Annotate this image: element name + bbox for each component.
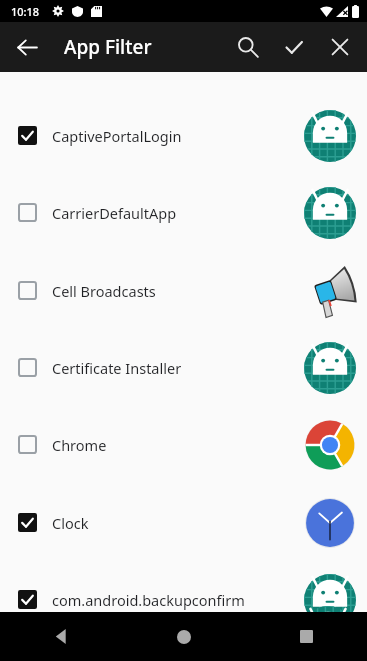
staticText: Chrome (52, 435, 107, 455)
button[interactable]: Certificate Installer (0, 329, 367, 406)
staticText: Certificate Installer (52, 358, 182, 378)
staticText: com.android.backupconfirm (52, 590, 245, 610)
button[interactable]: Cell Broadcasts (0, 252, 367, 329)
button[interactable]: Recents (245, 612, 367, 661)
button[interactable]: Confirm (271, 24, 317, 70)
staticText: Cell Broadcasts (52, 281, 156, 301)
button[interactable]: Home (123, 612, 245, 661)
staticText: App Filter (64, 34, 152, 60)
staticText: CaptivePortalLogin (52, 126, 182, 146)
staticText: CarrierDefaultApp (52, 203, 177, 223)
button[interactable]: Back (6, 26, 48, 68)
button[interactable]: CaptivePortalLogin (0, 97, 367, 174)
button[interactable]: Search (225, 24, 271, 70)
button[interactable]: Close (317, 24, 363, 70)
staticText: Clock (52, 513, 89, 533)
staticText: 10:18 (11, 4, 40, 19)
button[interactable]: CarrierDefaultApp (0, 174, 367, 251)
button[interactable]: Clock (0, 484, 367, 561)
button[interactable]: Chrome (0, 406, 367, 483)
button[interactable]: com.android.backupconfirm (0, 561, 367, 638)
button[interactable]: Back (0, 612, 123, 661)
